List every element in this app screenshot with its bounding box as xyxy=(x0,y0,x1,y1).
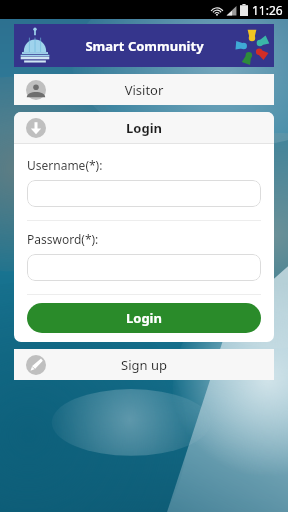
button[interactable]: Visitor xyxy=(14,74,274,105)
staticText: Sign up xyxy=(36,356,252,374)
staticText: 11:26 xyxy=(252,2,283,18)
staticText: Password(*): xyxy=(27,231,99,247)
staticText: Smart Community xyxy=(85,37,204,55)
button[interactable] xyxy=(27,254,261,281)
button[interactable] xyxy=(27,180,261,207)
staticText: Login xyxy=(126,309,162,327)
staticText: Username(*): xyxy=(27,157,103,173)
staticText: Visitor xyxy=(36,81,252,99)
button[interactable]: Login xyxy=(27,303,261,333)
button[interactable]: Sign up xyxy=(14,349,274,380)
staticText: Login xyxy=(36,119,252,137)
button[interactable]: Login xyxy=(14,112,274,143)
